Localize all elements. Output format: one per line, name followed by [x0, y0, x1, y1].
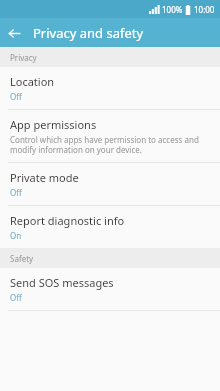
- staticText: 10:00: [194, 4, 215, 15]
- staticText: Off: [10, 292, 22, 303]
- staticText: Private mode: [10, 170, 79, 185]
- staticText: 100%: [162, 4, 183, 15]
- staticText: Privacy: [10, 52, 37, 63]
- button[interactable]: Send SOS messages: [0, 268, 220, 310]
- staticText: Off: [10, 91, 22, 102]
- staticText: Send SOS messages: [10, 275, 114, 290]
- staticText: Location: [10, 74, 55, 89]
- staticText: Report diagnostic info: [10, 213, 125, 228]
- button[interactable]: App permissions: [0, 110, 220, 162]
- staticText: Off: [10, 187, 22, 198]
- staticText: Safety: [10, 253, 34, 264]
- staticText: Control which apps have permission to ac…: [10, 134, 210, 155]
- button[interactable]: Back: [0, 19, 28, 47]
- staticText: App permissions: [10, 117, 97, 132]
- staticText: Privacy and safety: [33, 24, 144, 42]
- button[interactable]: Location: [0, 67, 220, 109]
- button[interactable]: Report diagnostic info: [0, 206, 220, 248]
- button[interactable]: Private mode: [0, 163, 220, 205]
- staticText: On: [10, 230, 22, 241]
